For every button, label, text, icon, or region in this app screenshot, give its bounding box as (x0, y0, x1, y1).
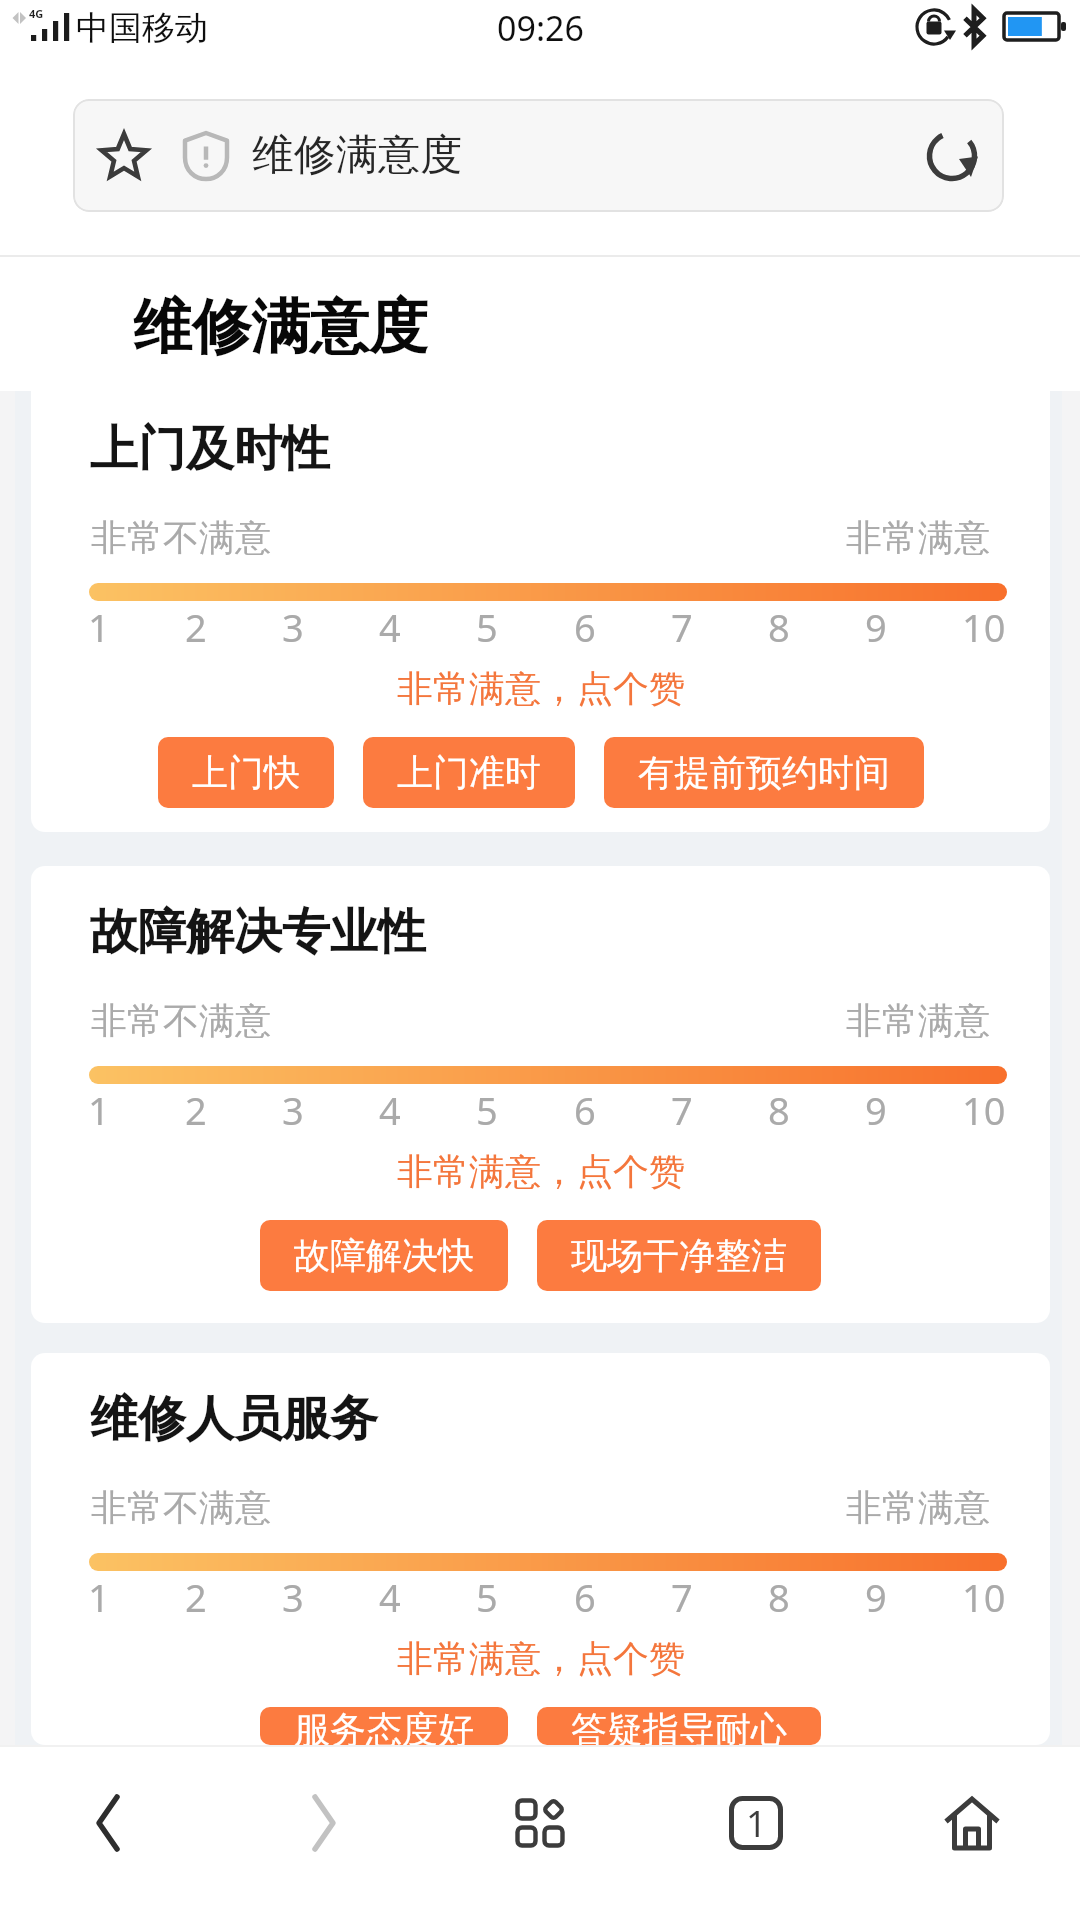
staticText: 7 (671, 601, 693, 653)
staticText: 答疑指导耐心 (571, 1707, 787, 1745)
staticText: 非常满意，点个赞 (397, 1149, 685, 1194)
staticText: 上门准时 (397, 750, 541, 795)
staticText: 4 (379, 1571, 401, 1623)
staticText: 09:26 (497, 5, 584, 51)
button[interactable]: 上门快 (158, 737, 334, 808)
button[interactable]: 有提前预约时间 (604, 737, 924, 808)
staticText: 1 (88, 601, 110, 653)
staticText: 维修满意度 (252, 129, 462, 182)
button[interactable]: 服务态度好 (260, 1707, 508, 1745)
staticText: 故障解决专业性 (90, 902, 426, 962)
staticText: 2 (185, 1084, 207, 1136)
button[interactable]: Forward (216, 1747, 432, 1920)
staticText: 10 (962, 601, 1006, 653)
staticText: 有提前预约时间 (638, 750, 890, 795)
staticText: 上门快 (192, 750, 300, 795)
staticText: 非常满意 (846, 1485, 990, 1530)
button[interactable]: 上门准时 (363, 737, 575, 808)
staticText: 6 (574, 1084, 596, 1136)
button[interactable]: 故障解决快 (260, 1220, 508, 1291)
staticText: 非常满意，点个赞 (397, 666, 685, 711)
staticText: 1 (746, 1799, 767, 1848)
staticText: 9 (865, 1084, 887, 1136)
staticText: 中国移动 (76, 7, 208, 49)
button[interactable]: Apps (432, 1747, 648, 1920)
staticText: 10 (962, 1084, 1006, 1136)
staticText: 6 (574, 1571, 596, 1623)
staticText: 7 (671, 1571, 693, 1623)
staticText: 4 (379, 1084, 401, 1136)
staticText: 5 (476, 1571, 498, 1623)
staticText: 3 (282, 1571, 304, 1623)
staticText: 8 (768, 1571, 790, 1623)
staticText: 非常不满意 (91, 515, 271, 560)
staticText: 2 (185, 601, 207, 653)
staticText: 8 (768, 1084, 790, 1136)
staticText: 维修满意度 (133, 290, 428, 364)
staticText: 1 (88, 1571, 110, 1623)
button[interactable]: Bookmark (96, 128, 152, 184)
staticText: 6 (574, 601, 596, 653)
staticText: 上门及时性 (90, 419, 330, 479)
staticText: 5 (476, 601, 498, 653)
staticText: 故障解决快 (294, 1233, 474, 1278)
staticText: 3 (282, 601, 304, 653)
staticText: 非常满意，点个赞 (397, 1636, 685, 1681)
button[interactable]: Back (0, 1747, 216, 1920)
staticText: 2 (185, 1571, 207, 1623)
staticText: 10 (962, 1571, 1006, 1623)
button[interactable]: Bookmark (73, 99, 1004, 212)
staticText: 9 (865, 1571, 887, 1623)
staticText: 非常满意 (846, 515, 990, 560)
button[interactable]: Home (864, 1747, 1080, 1920)
button[interactable]: Tabs (648, 1747, 864, 1920)
staticText: 4G (29, 6, 44, 21)
staticText: 现场干净整洁 (571, 1233, 787, 1278)
staticText: 1 (88, 1084, 110, 1136)
staticText: 9 (865, 601, 887, 653)
staticText: 3 (282, 1084, 304, 1136)
staticText: 非常满意 (846, 998, 990, 1043)
staticText: 维修人员服务 (90, 1389, 378, 1449)
button[interactable]: Refresh (902, 106, 1002, 206)
staticText: 5 (476, 1084, 498, 1136)
staticText: 7 (671, 1084, 693, 1136)
button[interactable]: 答疑指导耐心 (537, 1707, 821, 1745)
staticText: 非常不满意 (91, 998, 271, 1043)
staticText: 8 (768, 601, 790, 653)
button[interactable]: 现场干净整洁 (537, 1220, 821, 1291)
staticText: 4 (379, 601, 401, 653)
staticText: 服务态度好 (294, 1707, 474, 1745)
staticText: 非常不满意 (91, 1485, 271, 1530)
